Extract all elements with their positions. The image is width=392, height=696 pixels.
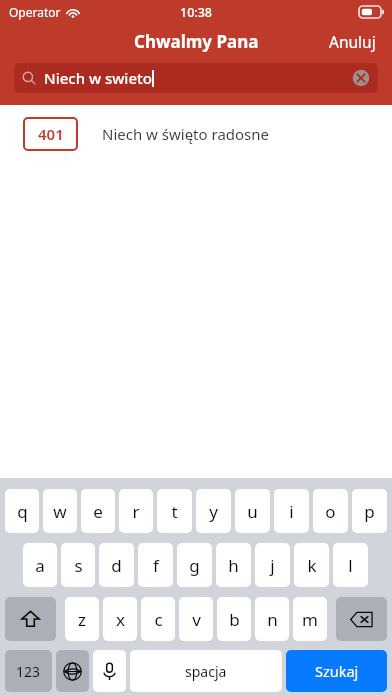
button[interactable]: o	[313, 489, 348, 533]
button[interactable]: Change keyboard	[56, 650, 89, 692]
staticText: Niech w swieto	[44, 68, 152, 88]
staticText: 401	[38, 124, 64, 144]
button[interactable]: l	[333, 543, 368, 587]
button[interactable]: y	[196, 489, 231, 533]
button[interactable]: i	[274, 489, 309, 533]
staticText: h	[228, 554, 239, 577]
staticText: t	[171, 500, 178, 523]
button[interactable]: Backspace	[336, 597, 387, 641]
staticText: y	[209, 500, 218, 523]
staticText: 10:38	[180, 4, 213, 21]
button[interactable]: a	[23, 543, 57, 587]
staticText: z	[78, 608, 86, 631]
button[interactable]: Clear text	[352, 69, 370, 87]
staticText: o	[325, 500, 336, 523]
staticText: s	[74, 554, 83, 577]
staticText: j	[270, 554, 275, 577]
button[interactable]: Szukaj	[286, 650, 387, 692]
staticText: v	[192, 608, 201, 631]
button[interactable]: 123	[5, 650, 52, 692]
button[interactable]: spacja	[130, 650, 282, 692]
staticText: m	[302, 608, 318, 631]
staticText: r	[132, 500, 140, 523]
staticText: e	[93, 500, 103, 523]
staticText: n	[267, 608, 278, 631]
button[interactable]: h	[216, 543, 251, 587]
staticText: a	[35, 554, 45, 577]
button[interactable]: z	[65, 597, 99, 641]
staticText: g	[189, 554, 200, 577]
staticText: Anuluj	[329, 31, 376, 52]
button[interactable]: d	[99, 543, 134, 587]
staticText: Niech w święto radosne	[102, 124, 270, 144]
staticText: b	[229, 608, 240, 631]
staticText: 123	[16, 662, 41, 681]
button[interactable]: q	[5, 489, 39, 533]
button[interactable]: n	[255, 597, 289, 641]
staticText: c	[154, 608, 163, 631]
button[interactable]: Anuluj	[325, 27, 380, 56]
staticText: q	[17, 500, 28, 523]
button[interactable]: 401	[0, 105, 392, 163]
staticText: k	[307, 554, 317, 577]
staticText: Szukaj	[315, 661, 359, 681]
button[interactable]: j	[255, 543, 290, 587]
button[interactable]: g	[177, 543, 212, 587]
button[interactable]: m	[293, 597, 327, 641]
staticText: u	[247, 500, 258, 523]
button[interactable]: t	[157, 489, 192, 533]
button[interactable]: r	[119, 489, 153, 533]
staticText: spacja	[185, 662, 227, 681]
button[interactable]: u	[235, 489, 270, 533]
button[interactable]: v	[179, 597, 213, 641]
button[interactable]: p	[352, 489, 387, 533]
staticText: Chwalmy Pana	[134, 30, 259, 53]
staticText: d	[111, 554, 122, 577]
button[interactable]: Dictate	[93, 650, 126, 692]
staticText: w	[53, 500, 67, 523]
staticText: f	[153, 554, 159, 577]
button[interactable]: e	[81, 489, 115, 533]
button[interactable]: Shift	[5, 597, 56, 641]
button[interactable]: x	[103, 597, 137, 641]
button[interactable]: b	[217, 597, 251, 641]
staticText: x	[116, 608, 125, 631]
button[interactable]: Niech w swieto	[14, 63, 378, 93]
staticText: p	[364, 500, 375, 523]
button[interactable]: s	[61, 543, 95, 587]
staticText: l	[348, 554, 353, 577]
button[interactable]: f	[138, 543, 173, 587]
button[interactable]: c	[141, 597, 175, 641]
button[interactable]: w	[43, 489, 77, 533]
staticText: i	[289, 500, 294, 523]
button[interactable]: k	[294, 543, 329, 587]
staticText: Operator	[9, 4, 61, 20]
